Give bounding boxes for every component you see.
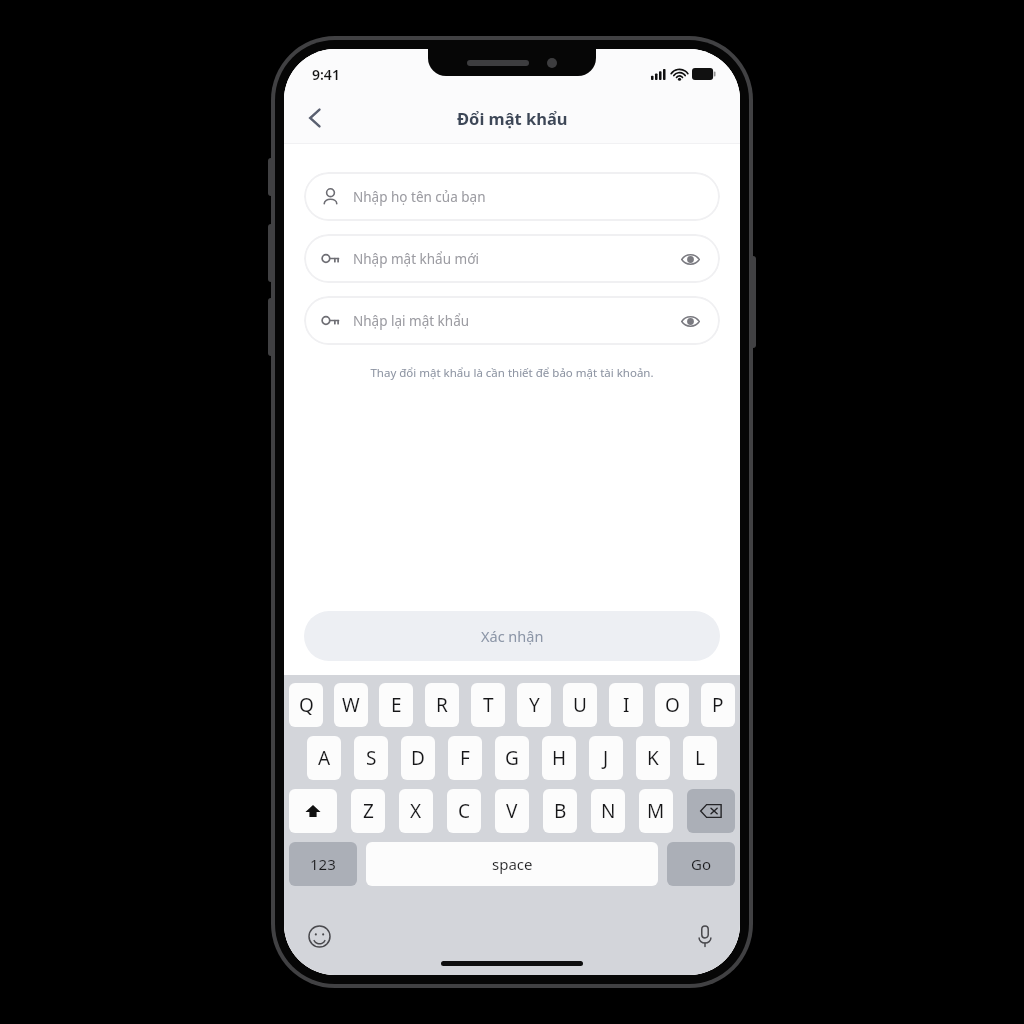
button[interactable]: J [589, 736, 623, 780]
staticText: A [318, 745, 331, 771]
button[interactable]: N [591, 789, 625, 833]
button[interactable]: Nhập lại mật khẩu [304, 296, 720, 345]
staticText: space [492, 854, 533, 874]
button[interactable]: Toggle password visibility [677, 308, 703, 334]
button[interactable]: Go [667, 842, 735, 886]
button[interactable]: V [495, 789, 529, 833]
button[interactable]: P [701, 683, 735, 727]
staticText: X [410, 798, 422, 824]
staticText: Nhập lại mật khẩu [353, 312, 677, 330]
button[interactable]: X [399, 789, 433, 833]
staticText: 9:41 [312, 65, 340, 84]
button[interactable]: Xác nhận [304, 611, 720, 661]
button[interactable]: Backspace [687, 789, 735, 833]
button[interactable]: U [563, 683, 597, 727]
staticText: W [342, 692, 360, 718]
button[interactable]: I [609, 683, 643, 727]
staticText: Thay đổi mật khẩu là cần thiết để bảo mậ… [304, 365, 720, 381]
staticText: R [436, 692, 448, 718]
button[interactable]: 123 [289, 842, 357, 886]
staticText: Y [529, 692, 540, 718]
staticText: M [647, 798, 665, 824]
staticText: Go [691, 854, 711, 874]
staticText: T [483, 692, 494, 718]
button[interactable]: W [334, 683, 368, 727]
staticText: I [623, 692, 630, 718]
staticText: Nhập họ tên của bạn [353, 188, 703, 206]
staticText: F [460, 745, 470, 771]
button[interactable]: Shift [289, 789, 337, 833]
button[interactable]: Nhập mật khẩu mới [304, 234, 720, 283]
staticText: D [411, 745, 425, 771]
staticText: L [695, 745, 705, 771]
staticText: J [603, 745, 609, 771]
staticText: S [366, 745, 377, 771]
button[interactable]: D [401, 736, 435, 780]
button[interactable]: Back [294, 97, 336, 139]
button[interactable]: M [639, 789, 673, 833]
staticText: O [665, 692, 680, 718]
staticText: V [506, 798, 518, 824]
staticText: K [647, 745, 659, 771]
button[interactable]: L [683, 736, 717, 780]
button[interactable]: Z [351, 789, 385, 833]
button[interactable]: space [366, 842, 658, 886]
staticText: U [573, 692, 587, 718]
button[interactable]: T [471, 683, 505, 727]
button[interactable]: H [542, 736, 576, 780]
staticText: 123 [310, 854, 336, 874]
button[interactable]: Emoji [304, 921, 334, 951]
staticText: Q [299, 692, 314, 718]
staticText: B [554, 798, 567, 824]
staticText: G [505, 745, 519, 771]
button[interactable]: S [354, 736, 388, 780]
button[interactable]: Y [517, 683, 551, 727]
staticText: Nhập mật khẩu mới [353, 250, 677, 268]
staticText: Z [363, 798, 374, 824]
staticText: C [458, 798, 471, 824]
button[interactable]: A [307, 736, 341, 780]
button[interactable]: B [543, 789, 577, 833]
staticText: E [391, 692, 402, 718]
button[interactable]: Toggle password visibility [677, 246, 703, 272]
staticText: Xác nhận [481, 626, 544, 646]
staticText: H [552, 745, 567, 771]
button[interactable]: F [448, 736, 482, 780]
button[interactable]: Voice input [690, 921, 720, 951]
button[interactable]: E [379, 683, 413, 727]
staticText: N [601, 798, 616, 824]
button[interactable]: Nhập họ tên của bạn [304, 172, 720, 221]
staticText: P [712, 692, 724, 718]
button[interactable]: K [636, 736, 670, 780]
button[interactable]: Q [289, 683, 323, 727]
button[interactable]: G [495, 736, 529, 780]
button[interactable]: O [655, 683, 689, 727]
staticText: Đổi mật khẩu [457, 107, 568, 129]
button[interactable]: R [425, 683, 459, 727]
button[interactable]: C [447, 789, 481, 833]
